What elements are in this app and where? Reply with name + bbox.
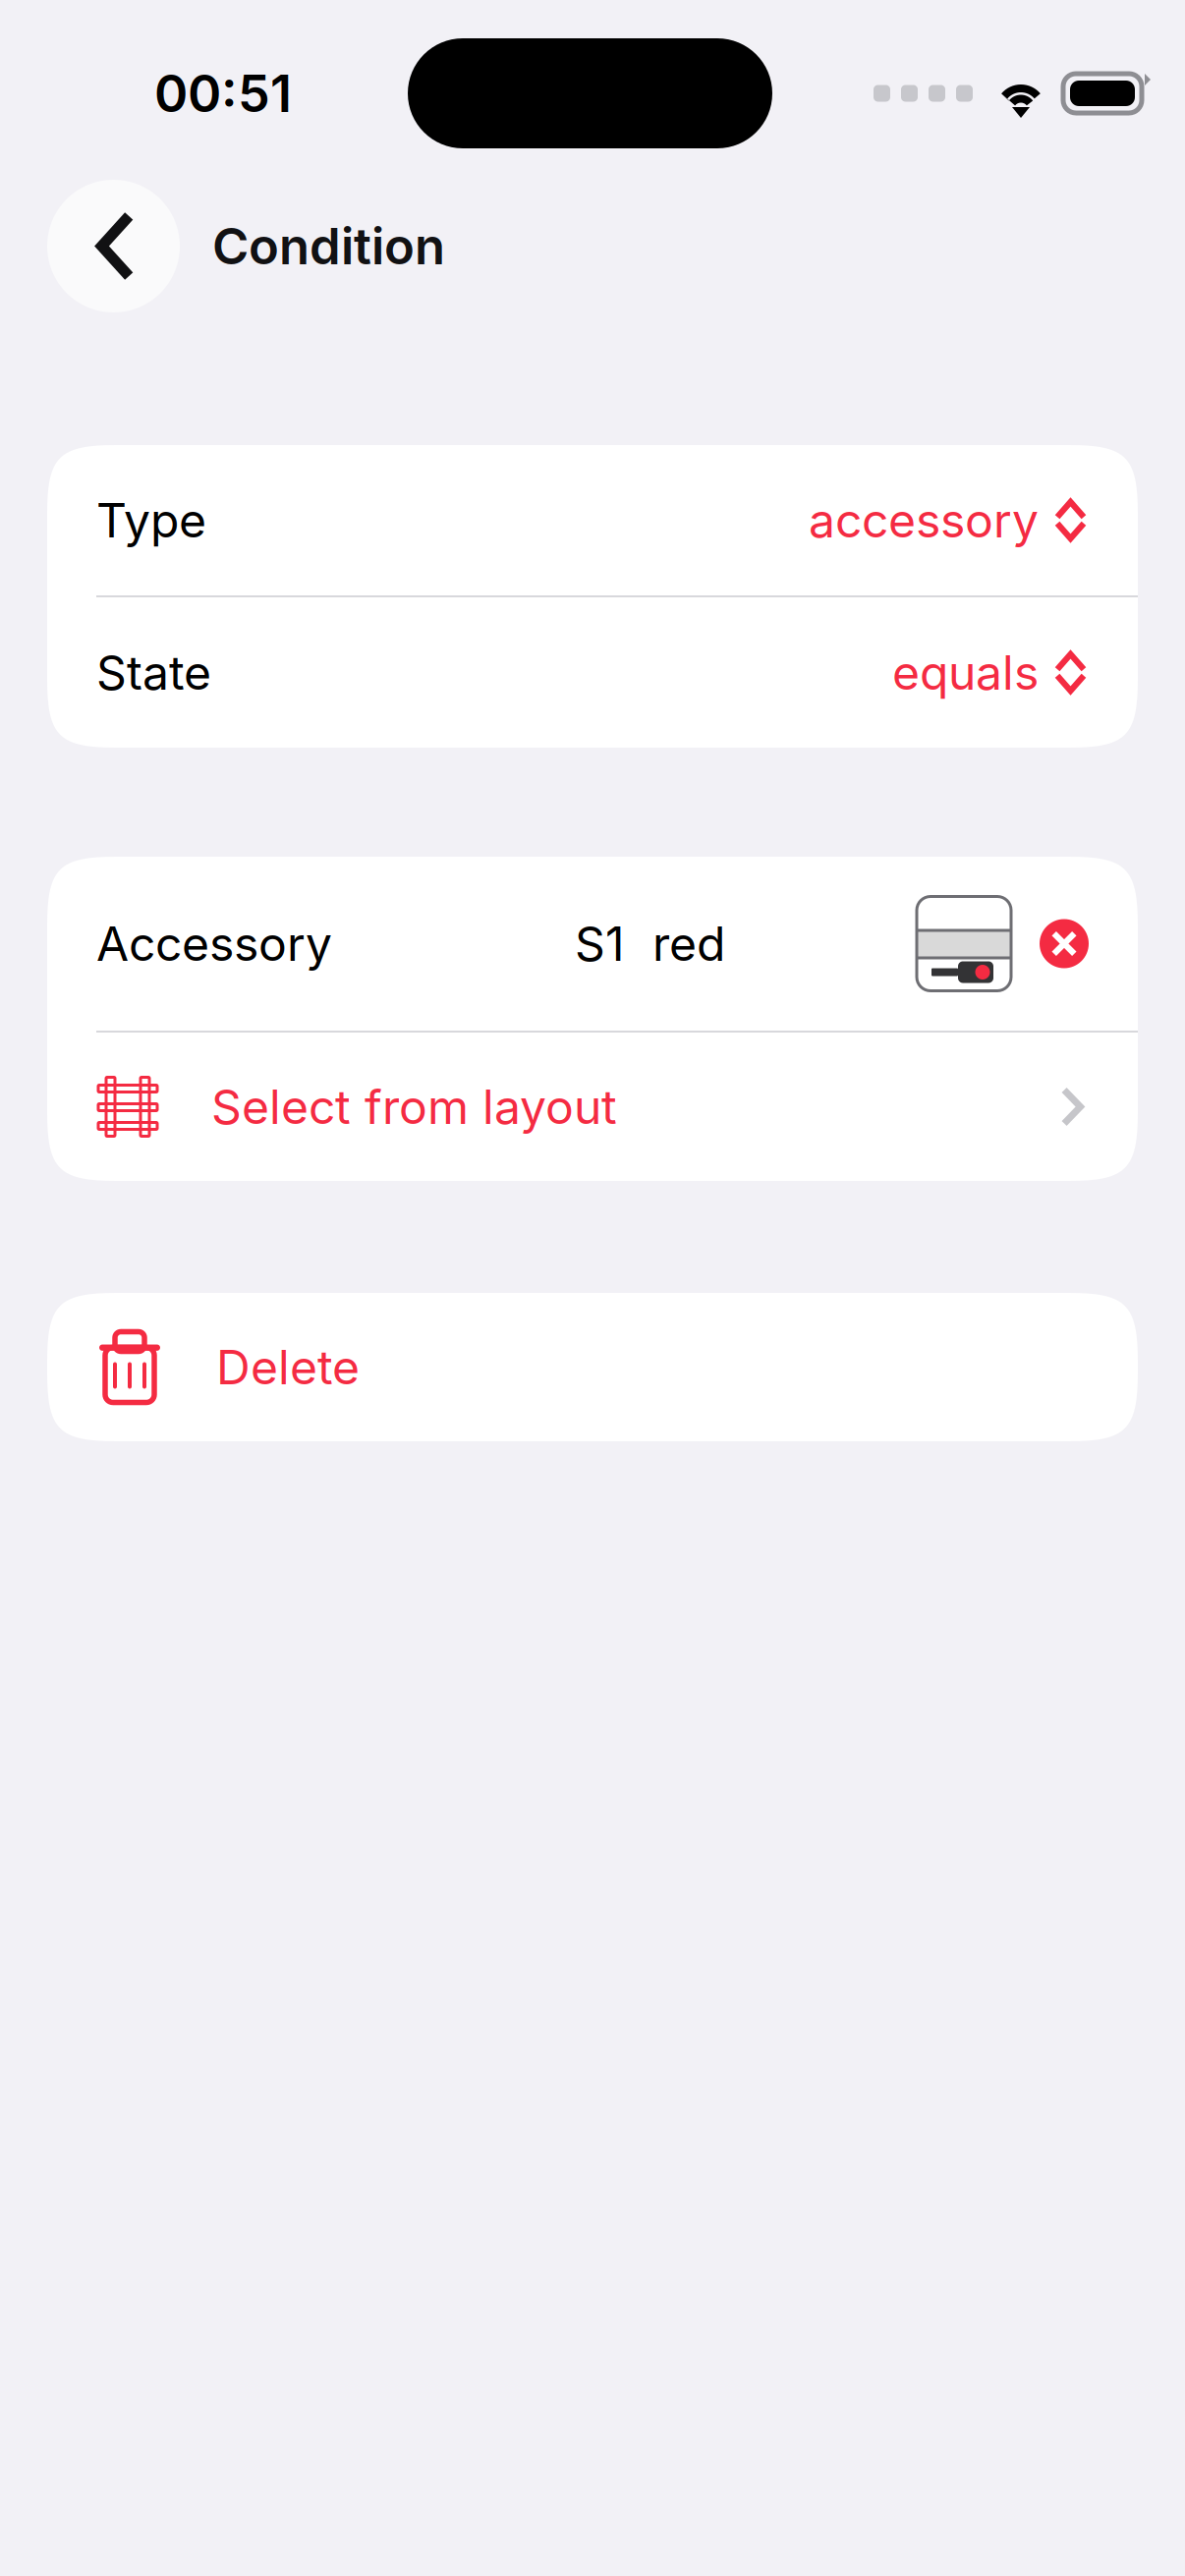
staticText: State <box>96 644 211 701</box>
staticText: Accessory <box>96 915 332 972</box>
button[interactable]: Type <box>47 445 1138 595</box>
button[interactable]: State <box>47 597 1138 748</box>
staticText: S1 red <box>575 915 725 972</box>
button[interactable]: Select from layout <box>47 1033 1138 1181</box>
staticText: Delete <box>216 1339 360 1396</box>
button[interactable]: Delete <box>47 1293 1138 1441</box>
staticText: Select from layout <box>211 1078 617 1135</box>
staticText: accessory <box>809 492 1039 549</box>
button[interactable]: Back <box>47 180 180 312</box>
staticText: Type <box>96 492 206 549</box>
staticText: 00:51 <box>154 62 292 124</box>
staticText: equals <box>892 644 1039 701</box>
button[interactable]: Accessory <box>47 857 1138 1031</box>
staticText: Condition <box>212 216 445 276</box>
